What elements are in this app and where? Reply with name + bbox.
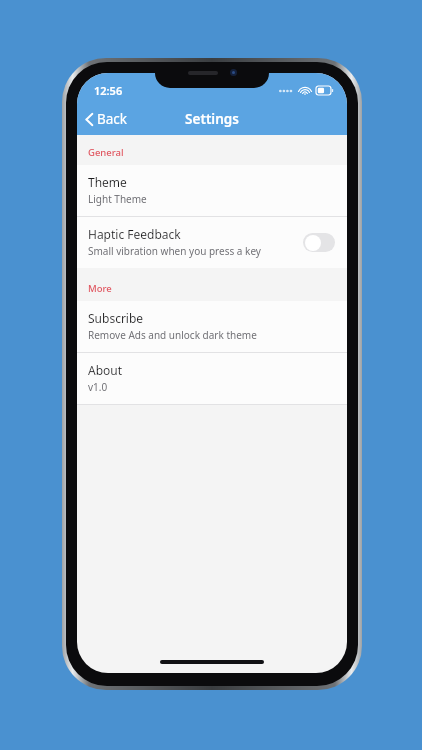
staticText: Light Theme — [88, 192, 147, 206]
button[interactable]: Subscribe — [77, 301, 347, 352]
staticText: Subscribe — [88, 310, 144, 326]
button[interactable]: Haptic Feedback — [77, 217, 347, 268]
staticText: v1.0 — [88, 380, 108, 394]
button[interactable]: Back — [77, 106, 138, 132]
staticText: About — [88, 362, 123, 378]
staticText: Remove Ads and unlock dark theme — [88, 328, 257, 342]
button[interactable]: Haptic Feedback toggle, off — [303, 233, 335, 252]
staticText: Settings — [185, 110, 239, 128]
staticText: Haptic Feedback — [88, 226, 181, 242]
staticText: Small vibration when you press a key — [88, 244, 261, 258]
button[interactable]: About — [77, 353, 347, 404]
staticText: 12:56 — [94, 83, 123, 98]
staticText: General — [88, 146, 124, 159]
staticText: Back — [97, 110, 128, 128]
button[interactable]: Theme — [77, 165, 347, 216]
staticText: Theme — [88, 174, 127, 190]
staticText: More — [88, 282, 112, 295]
